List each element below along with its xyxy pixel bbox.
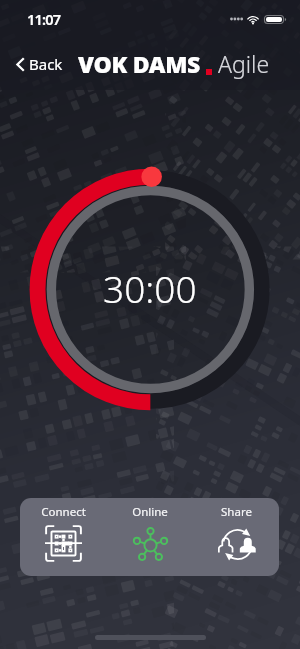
staticText: 11:07	[27, 9, 61, 29]
button[interactable]: Connect	[20, 498, 107, 576]
button[interactable]: Share	[193, 498, 279, 576]
staticText: 30:00	[103, 263, 197, 313]
staticText: Agile	[218, 48, 270, 79]
button[interactable]: Online	[107, 498, 193, 576]
staticText: Online	[132, 504, 168, 520]
staticText: Connect	[41, 504, 86, 520]
button[interactable]: Back	[0, 46, 73, 82]
staticText: Back	[29, 54, 63, 74]
staticText: VOK DAMS	[78, 48, 201, 79]
staticText: Share	[221, 504, 252, 520]
